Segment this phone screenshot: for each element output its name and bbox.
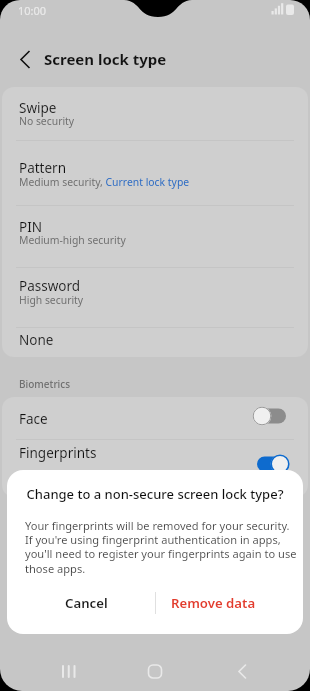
staticText: None (19, 331, 54, 349)
staticText: Biometrics (19, 377, 71, 391)
button[interactable] (116, 652, 193, 691)
staticText: Face (19, 410, 48, 428)
button[interactable]: Fingerprints (2, 439, 308, 497)
button[interactable] (251, 405, 291, 427)
button[interactable]: Remove data (158, 588, 268, 618)
staticText: Screen lock type (44, 49, 167, 69)
staticText: Swipe (19, 99, 57, 117)
staticText: No security (19, 114, 75, 128)
button[interactable] (193, 652, 270, 691)
staticText: Medium-high security (19, 233, 126, 247)
staticText: Password (19, 277, 81, 295)
staticText: Cancel (65, 594, 108, 612)
button[interactable]: PIN (2, 205, 308, 267)
staticText: those apps. (25, 561, 86, 576)
staticText: you'll need to register your fingerprint… (25, 546, 297, 561)
button[interactable] (251, 453, 291, 475)
staticText: 10:00 (18, 3, 47, 18)
button[interactable] (12, 46, 38, 72)
staticText: Your fingerprints will be removed for yo… (25, 518, 290, 533)
button[interactable]: Password (2, 267, 308, 327)
button[interactable]: Swipe (2, 87, 308, 140)
button[interactable]: Cancel (36, 588, 136, 618)
button[interactable]: Pattern (2, 140, 308, 205)
button[interactable]: Face (2, 397, 308, 439)
staticText: If you're using fingerprint authenticati… (25, 532, 281, 547)
staticText: PIN (19, 218, 43, 236)
staticText: Change to a non-secure screen lock type? (7, 485, 303, 503)
button[interactable] (40, 652, 116, 691)
staticText: Fingerprints (19, 444, 97, 462)
button[interactable]: None (2, 327, 308, 357)
staticText: Pattern (19, 159, 67, 177)
staticText: High security (19, 293, 84, 307)
staticText: Remove data (171, 594, 256, 612)
staticText: Medium security, Current lock type (19, 175, 190, 189)
